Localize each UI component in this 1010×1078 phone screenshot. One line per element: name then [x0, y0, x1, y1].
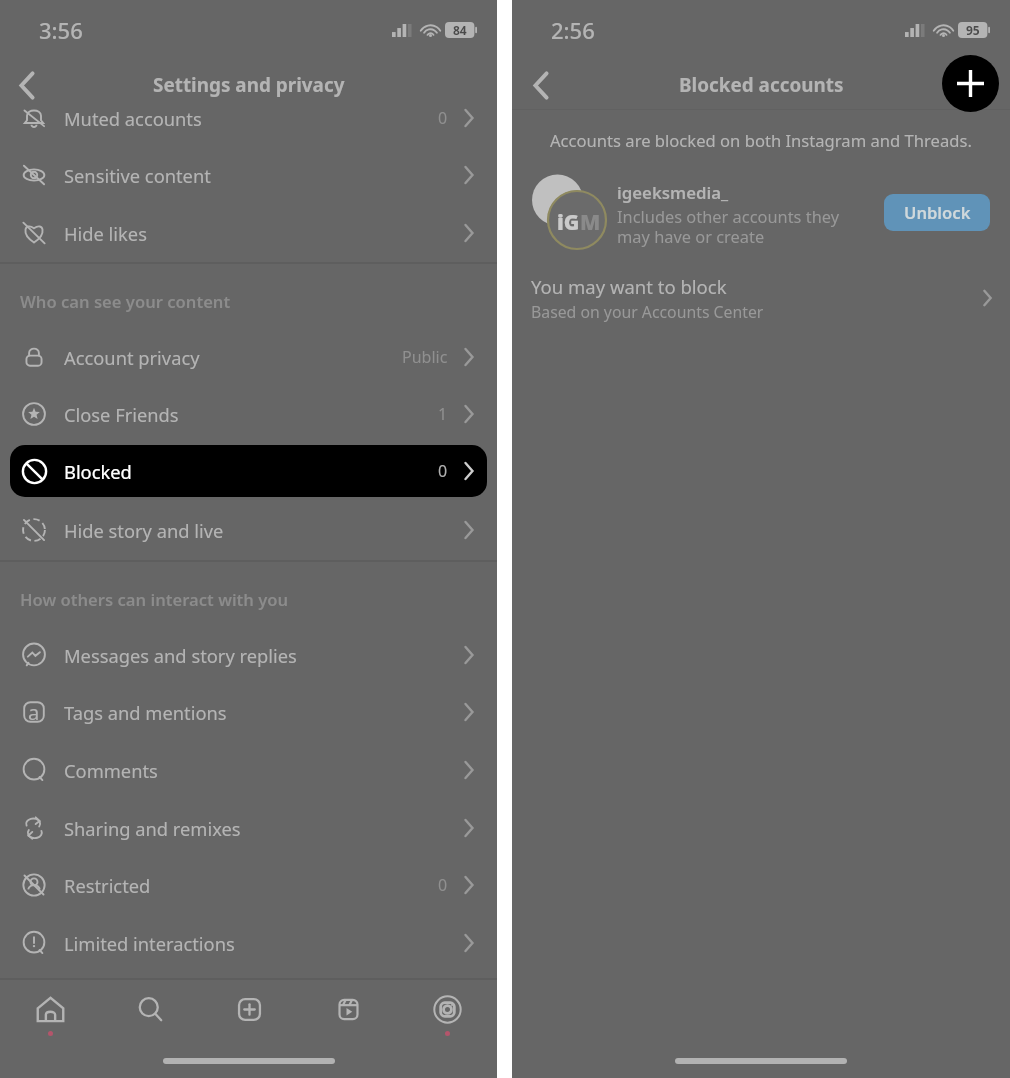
staticText: Limited interactions: [64, 931, 235, 956]
staticText: You may want to block: [531, 274, 727, 299]
staticText: Restricted: [64, 873, 151, 898]
staticText: 2:56: [551, 15, 595, 45]
button[interactable]: a: [0, 684, 497, 740]
button[interactable]: You may want to block: [512, 268, 1010, 328]
staticText: 3:56: [39, 15, 83, 45]
staticText: 0: [438, 874, 448, 896]
staticText: 0: [438, 107, 448, 129]
staticText: Account privacy: [64, 345, 200, 370]
staticText: Sensitive content: [64, 163, 211, 188]
button[interactable]: Account privacy: [0, 329, 497, 385]
staticText: 84: [453, 22, 467, 38]
button[interactable]: Search: [100, 980, 200, 1040]
button[interactable]: Profile: [398, 980, 497, 1040]
button[interactable]: Back: [521, 65, 561, 105]
staticText: Public: [402, 346, 448, 368]
staticText: 1: [438, 403, 448, 425]
staticText: Based on your Accounts Center: [531, 301, 764, 323]
staticText: Messages and story replies: [64, 643, 297, 668]
staticText: Blocked accounts: [679, 72, 844, 98]
button[interactable]: Sharing and remixes: [0, 800, 497, 856]
staticText: Comments: [64, 758, 158, 783]
staticText: 95: [966, 22, 980, 38]
button[interactable]: Blocked: [10, 445, 487, 497]
staticText: a: [28, 698, 40, 725]
button[interactable]: Hide likes: [0, 205, 497, 261]
button[interactable]: iG: [512, 170, 1010, 264]
button[interactable]: Messages and story replies: [0, 627, 497, 683]
button[interactable]: Add: [942, 55, 999, 112]
staticText: Sharing and remixes: [64, 816, 241, 841]
button[interactable]: Home: [0, 980, 100, 1040]
button[interactable]: Reels: [299, 980, 398, 1040]
staticText: Blocked: [64, 459, 132, 484]
staticText: igeeksmedia_: [617, 181, 729, 204]
button[interactable]: Muted accounts: [0, 90, 497, 146]
staticText: How others can interact with you: [20, 588, 289, 611]
staticText: Tags and mentions: [64, 700, 227, 725]
staticText: Accounts are blocked on both Instagram a…: [550, 129, 972, 152]
button[interactable]: Close Friends: [0, 386, 497, 442]
button[interactable]: Sensitive content: [0, 147, 497, 203]
button[interactable]: Restricted: [0, 857, 497, 913]
staticText: Muted accounts: [64, 106, 202, 131]
staticText: M: [580, 208, 601, 237]
button[interactable]: Hide story and live: [0, 502, 497, 558]
button[interactable]: Back: [7, 65, 47, 105]
staticText: Unblock: [904, 201, 971, 224]
button[interactable]: Limited interactions: [0, 915, 497, 971]
button[interactable]: Comments: [0, 742, 497, 798]
staticText: iG: [557, 208, 580, 237]
staticText: Hide story and live: [64, 518, 224, 543]
staticText: Close Friends: [64, 402, 179, 427]
button[interactable]: Create: [200, 980, 299, 1040]
staticText: Settings and privacy: [153, 72, 345, 98]
staticText: Who can see your content: [20, 290, 231, 313]
staticText: 0: [438, 460, 448, 482]
button[interactable]: Unblock: [884, 194, 990, 231]
staticText: Hide likes: [64, 221, 147, 246]
staticText: Includes other accounts they may have or…: [617, 205, 853, 248]
